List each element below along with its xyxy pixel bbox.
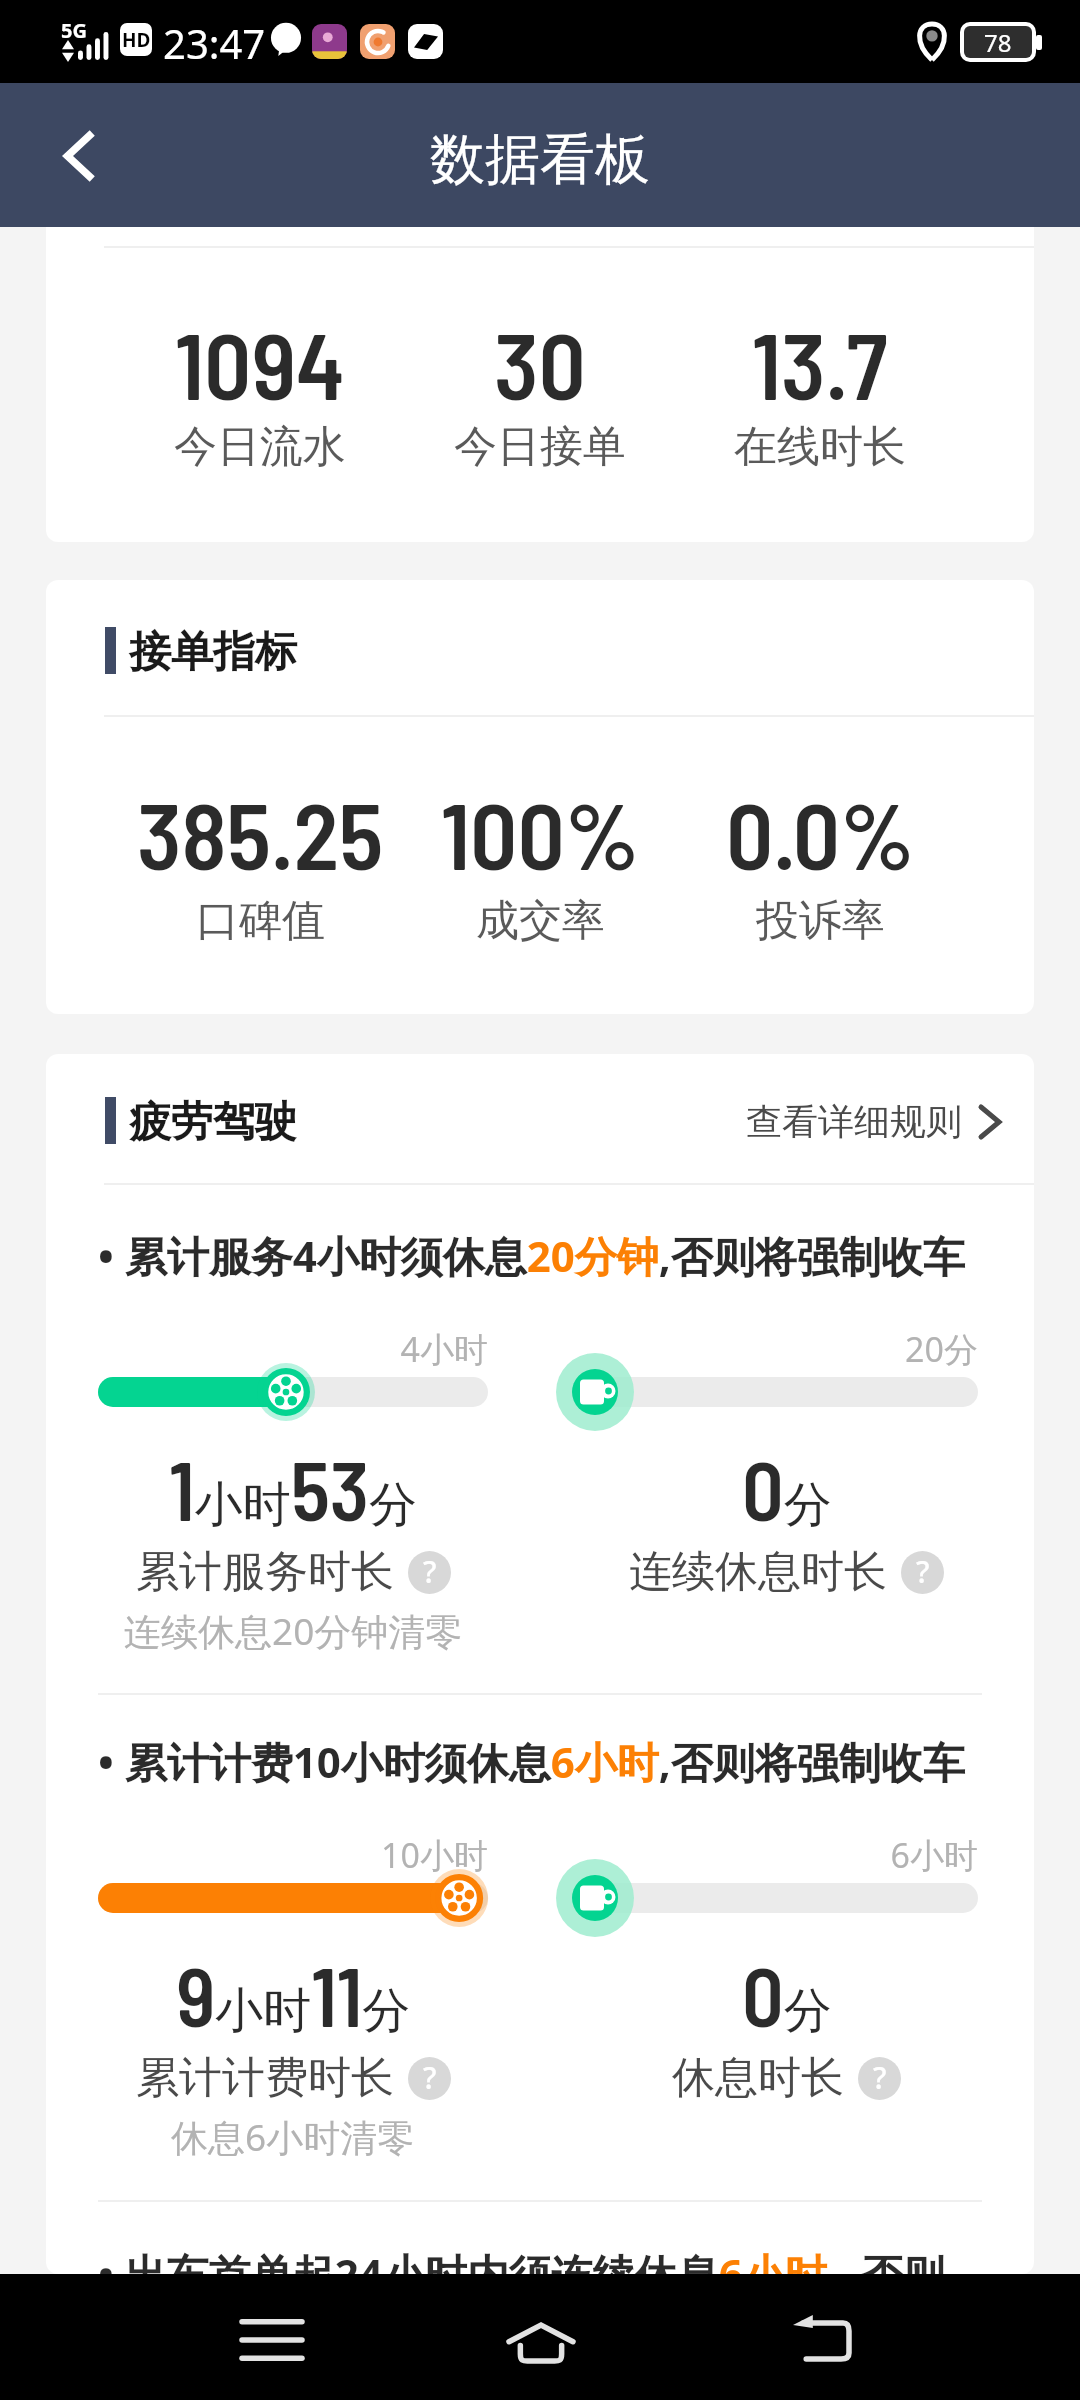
staticText: 连续休息时长 — [629, 1545, 887, 1599]
staticText: 休息时长 — [672, 2051, 844, 2105]
staticText: ? — [916, 1551, 930, 1592]
staticText: 0.0% — [726, 777, 915, 889]
staticText: 数据看板 — [430, 125, 650, 194]
staticText: 6小时 — [595, 1832, 978, 1878]
staticText: 累计服务时长 — [136, 1545, 394, 1599]
staticText: 13.7 — [752, 307, 888, 419]
staticText: 23:47 — [163, 16, 266, 70]
staticText: 接单指标 — [129, 626, 297, 679]
staticText: 今日流水 — [174, 420, 346, 474]
staticText: 9小时11分 — [176, 1945, 411, 2043]
staticText: 0分 — [742, 1945, 832, 2043]
staticText: ? — [423, 2057, 437, 2098]
staticText: 查看详细规则 — [746, 1099, 962, 1144]
staticText: 385.25 — [137, 777, 384, 889]
button[interactable]: Recents — [202, 2277, 342, 2400]
staticText: 累计计费时长 — [136, 2051, 394, 2105]
staticText: 78 — [984, 26, 1012, 58]
staticText: • 累计服务4小时须休息20分钟,否则将强制收车 — [98, 1227, 965, 1284]
staticText: 100% — [441, 777, 640, 889]
staticText: 在线时长 — [734, 420, 906, 474]
staticText: • 累计计费10小时须休息6小时,否则将强制收车 — [98, 1733, 965, 1790]
staticText: 20分 — [595, 1326, 978, 1372]
staticText: 连续休息20分钟清零 — [124, 1605, 463, 1656]
staticText: 1小时53分 — [169, 1439, 418, 1537]
button[interactable]: 查看详细规则 — [746, 1099, 1000, 1144]
button[interactable]: Back — [0, 83, 150, 227]
staticText: 疲劳驾驶 — [129, 1096, 297, 1149]
staticText: 1094 — [175, 307, 345, 419]
staticText: 30 — [494, 307, 586, 419]
button[interactable]: Home — [471, 2280, 611, 2400]
staticText: 投诉率 — [756, 894, 885, 948]
staticText: 10小时 — [98, 1832, 488, 1878]
staticText: ? — [423, 1551, 437, 1592]
staticText: HD — [122, 27, 151, 53]
staticText: 5G — [61, 17, 87, 44]
staticText: 成交率 — [476, 894, 605, 948]
staticText: 今日接单 — [454, 420, 626, 474]
staticText: 4小时 — [98, 1326, 488, 1372]
staticText: 口碑值 — [196, 894, 325, 948]
staticText: 休息6小时清零 — [171, 2111, 415, 2162]
staticText: • 出车首单起24小时内须连续休息6小时 , 否则 — [98, 2245, 945, 2274]
staticText: ? — [873, 2057, 887, 2098]
staticText: 0分 — [742, 1439, 832, 1537]
button[interactable]: Back — [753, 2278, 893, 2400]
